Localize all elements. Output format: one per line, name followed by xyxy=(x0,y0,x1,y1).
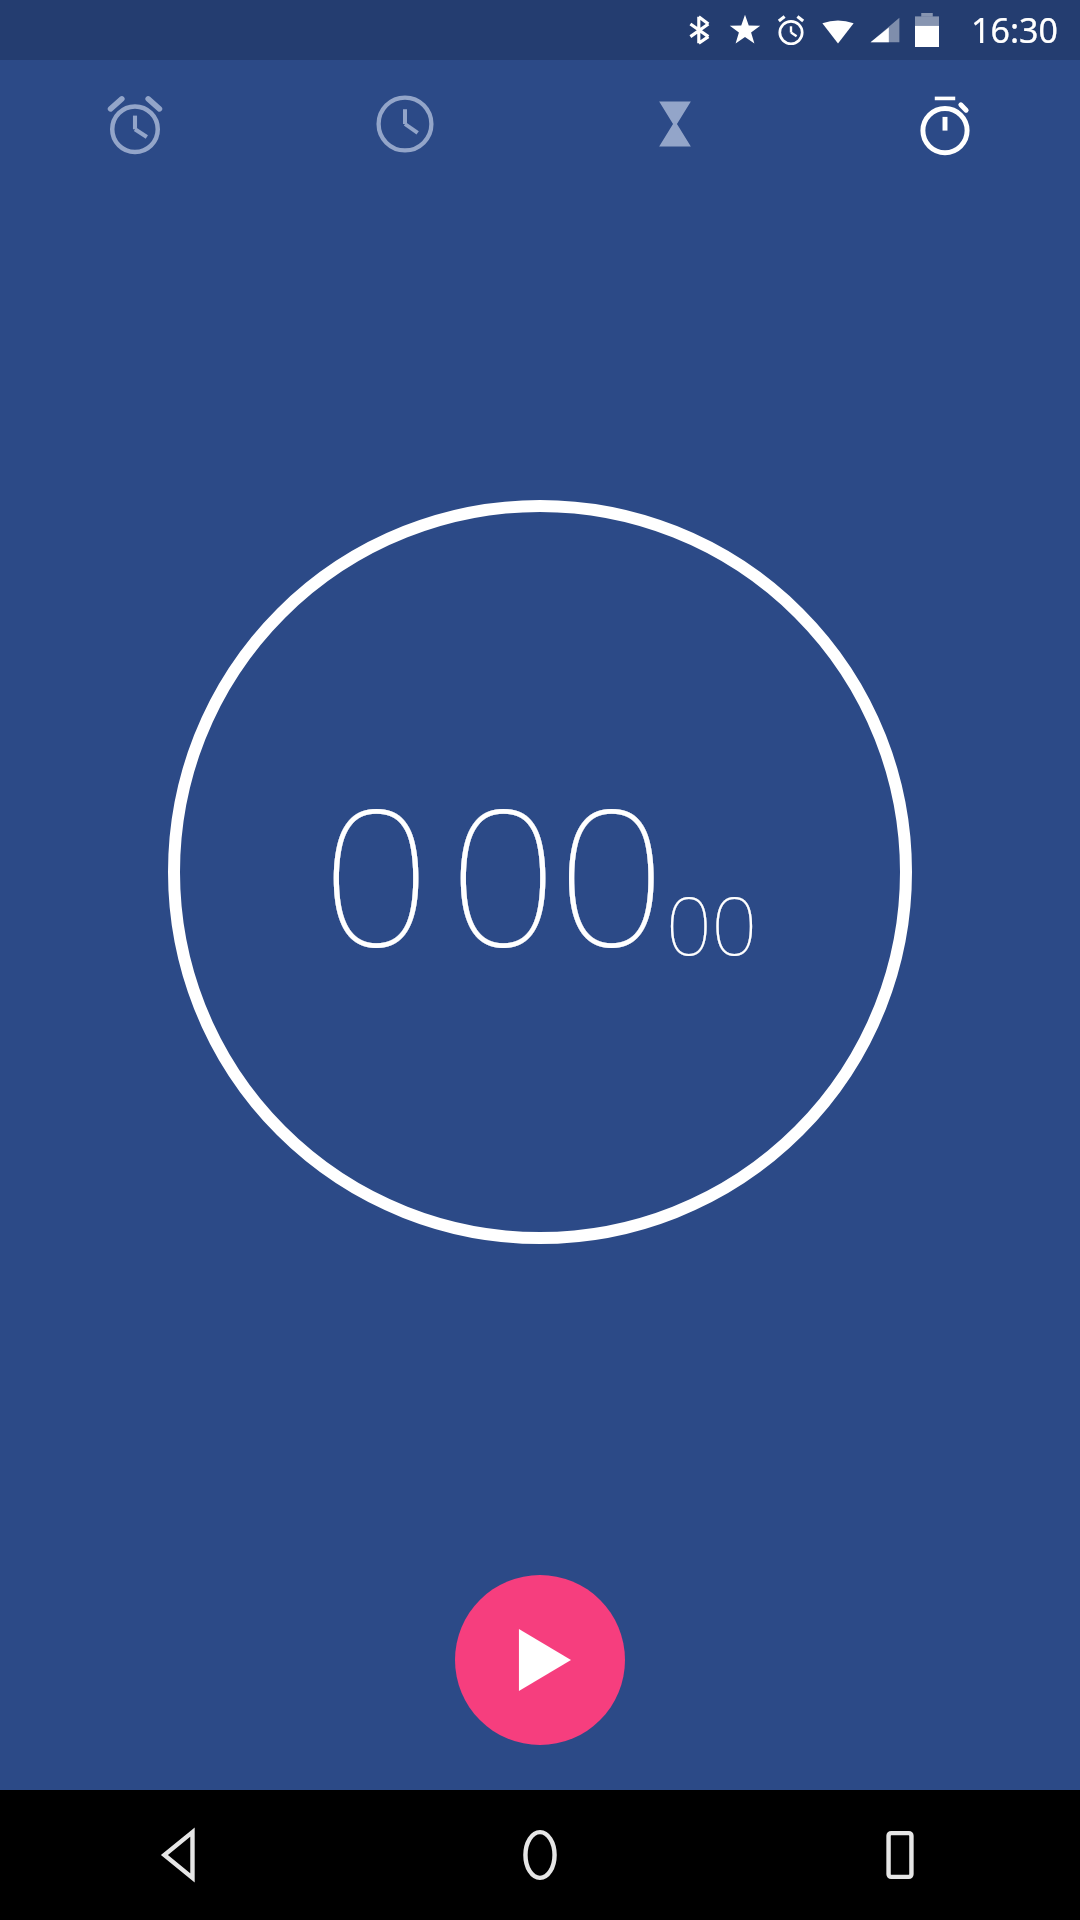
button[interactable]: Clock xyxy=(270,60,540,188)
button[interactable]: Timer xyxy=(540,60,810,188)
button[interactable]: Home xyxy=(360,1790,720,1920)
button[interactable]: Back xyxy=(0,1790,360,1920)
staticText: 00 xyxy=(449,743,666,1002)
staticText: 0 xyxy=(322,743,431,1002)
button[interactable]: Stopwatch xyxy=(810,60,1080,188)
staticText: 16:30 xyxy=(971,7,1058,53)
button[interactable]: Start xyxy=(455,1575,625,1745)
button[interactable]: Recents xyxy=(720,1790,1080,1920)
staticText: 00 xyxy=(666,869,758,978)
button[interactable]: Alarm xyxy=(0,60,270,188)
